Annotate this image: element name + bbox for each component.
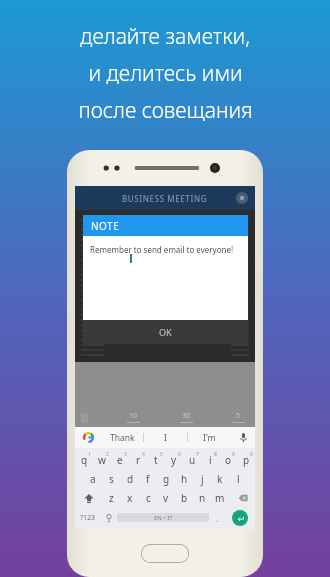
staticText: j [201, 472, 204, 486]
staticText: q [81, 453, 88, 467]
button[interactable]: a [83, 469, 102, 488]
button[interactable]: o [219, 450, 237, 469]
button[interactable]: Backspace [229, 488, 255, 507]
staticText: после совещания [78, 96, 253, 125]
staticText: и делитесь ими [88, 59, 243, 88]
staticText: 6 [178, 451, 181, 458]
staticText: 7 [196, 451, 199, 458]
staticText: o [225, 453, 232, 467]
button[interactable]: w [93, 450, 111, 469]
button[interactable]: . [209, 508, 225, 527]
staticText: x [127, 491, 133, 505]
staticText: 5 [236, 411, 241, 421]
staticText: r [136, 453, 141, 467]
staticText: 5 [160, 451, 163, 458]
staticText: NOTE [91, 219, 120, 233]
button[interactable]: I'm [188, 427, 231, 448]
staticText: 2 [106, 451, 109, 458]
button[interactable]: Options [236, 192, 248, 204]
staticText: Remember to send email to everyone! [90, 244, 234, 255]
staticText: p [243, 453, 250, 467]
button[interactable]: z [102, 488, 121, 507]
staticText: h [181, 472, 188, 486]
staticText: делайте заметки, [80, 22, 250, 51]
button[interactable]: g [157, 469, 175, 488]
staticText: Thank [110, 432, 135, 444]
staticText: f [146, 472, 150, 486]
button[interactable]: i [201, 450, 219, 469]
staticText: BUSINESS MEETING [122, 193, 208, 204]
staticText: i [209, 453, 212, 467]
button[interactable]: Voice input [231, 427, 255, 448]
staticText: z [109, 491, 114, 505]
button[interactable]: p [237, 450, 255, 469]
staticText: u [189, 453, 196, 467]
staticText: l [237, 472, 240, 486]
button[interactable]: OK [83, 320, 248, 344]
staticText: 30 [182, 411, 191, 421]
button[interactable]: r [129, 450, 147, 469]
button[interactable]: v [157, 488, 175, 507]
staticText: c [146, 491, 151, 505]
button[interactable]: u [183, 450, 201, 469]
button[interactable]: s [102, 469, 121, 488]
button[interactable]: ?123 [75, 508, 101, 527]
staticText: 4 [142, 451, 145, 458]
button[interactable]: e [111, 450, 129, 469]
staticText: 8 [214, 451, 217, 458]
staticText: 3 [124, 451, 127, 458]
button[interactable]: c [139, 488, 157, 507]
button[interactable]: d [121, 469, 139, 488]
staticText: y [171, 453, 177, 467]
staticText: OK [159, 326, 172, 338]
staticText: I'm [203, 432, 216, 444]
staticText: s [109, 472, 114, 486]
staticText: EN • IT [154, 514, 173, 522]
button[interactable]: Shift [75, 488, 102, 507]
staticText: e [117, 453, 123, 467]
staticText: k [217, 472, 223, 486]
button[interactable]: b [175, 488, 193, 507]
staticText: 0 [250, 451, 253, 458]
button[interactable]: k [211, 469, 229, 488]
button[interactable]: q [75, 450, 93, 469]
staticText: b [181, 491, 188, 505]
button[interactable]: Enter [232, 510, 248, 526]
staticText: v [163, 491, 169, 505]
staticText: . [216, 512, 219, 524]
button[interactable]: y [165, 450, 183, 469]
button[interactable]: Emoji [101, 508, 117, 527]
button[interactable]: m [211, 488, 229, 507]
button[interactable]: j [193, 469, 211, 488]
staticText: g [163, 472, 170, 486]
button[interactable]: t [147, 450, 165, 469]
button[interactable]: Home [141, 544, 189, 563]
button[interactable]: Thank [101, 427, 143, 448]
button[interactable]: l [229, 469, 247, 488]
staticText: 1 [88, 451, 91, 458]
staticText: m [215, 491, 225, 505]
button[interactable]: x [121, 488, 139, 507]
button[interactable]: h [175, 469, 193, 488]
staticText: ?123 [80, 513, 96, 523]
button[interactable]: f [139, 469, 157, 488]
button[interactable]: I [144, 427, 187, 448]
staticText: 10 [129, 411, 138, 421]
button[interactable]: n [193, 488, 211, 507]
staticText: I [164, 432, 167, 444]
staticText: t [154, 453, 158, 467]
button[interactable]: Google [75, 427, 101, 448]
button[interactable]: Space [117, 513, 209, 522]
staticText: a [90, 472, 96, 486]
staticText: w [98, 453, 106, 467]
staticText: 9 [232, 451, 235, 458]
staticText: n [199, 491, 206, 505]
staticText: d [127, 472, 134, 486]
